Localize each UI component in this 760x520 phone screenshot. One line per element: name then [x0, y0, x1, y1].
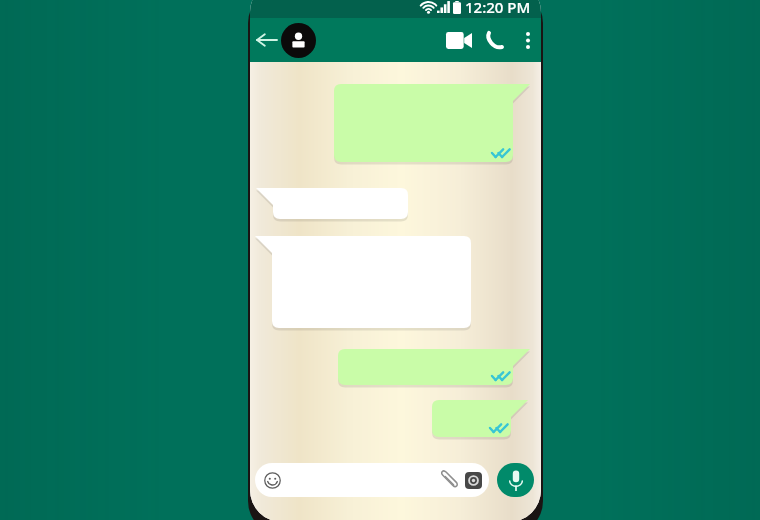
staticText: 12:20 PM	[465, 0, 531, 17]
button[interactable]	[255, 236, 471, 331]
button[interactable]	[256, 188, 408, 222]
button[interactable]	[338, 349, 530, 388]
button[interactable]	[334, 84, 530, 165]
button[interactable]: Contact profile	[281, 23, 316, 58]
button[interactable]: Record voice message	[497, 463, 534, 497]
button[interactable]: Video call	[442, 23, 476, 57]
button[interactable]	[432, 400, 528, 440]
button[interactable]: Back	[251, 25, 281, 55]
button[interactable]	[255, 463, 489, 497]
button[interactable]: More options	[515, 27, 541, 53]
button[interactable]: Voice call	[478, 23, 512, 57]
